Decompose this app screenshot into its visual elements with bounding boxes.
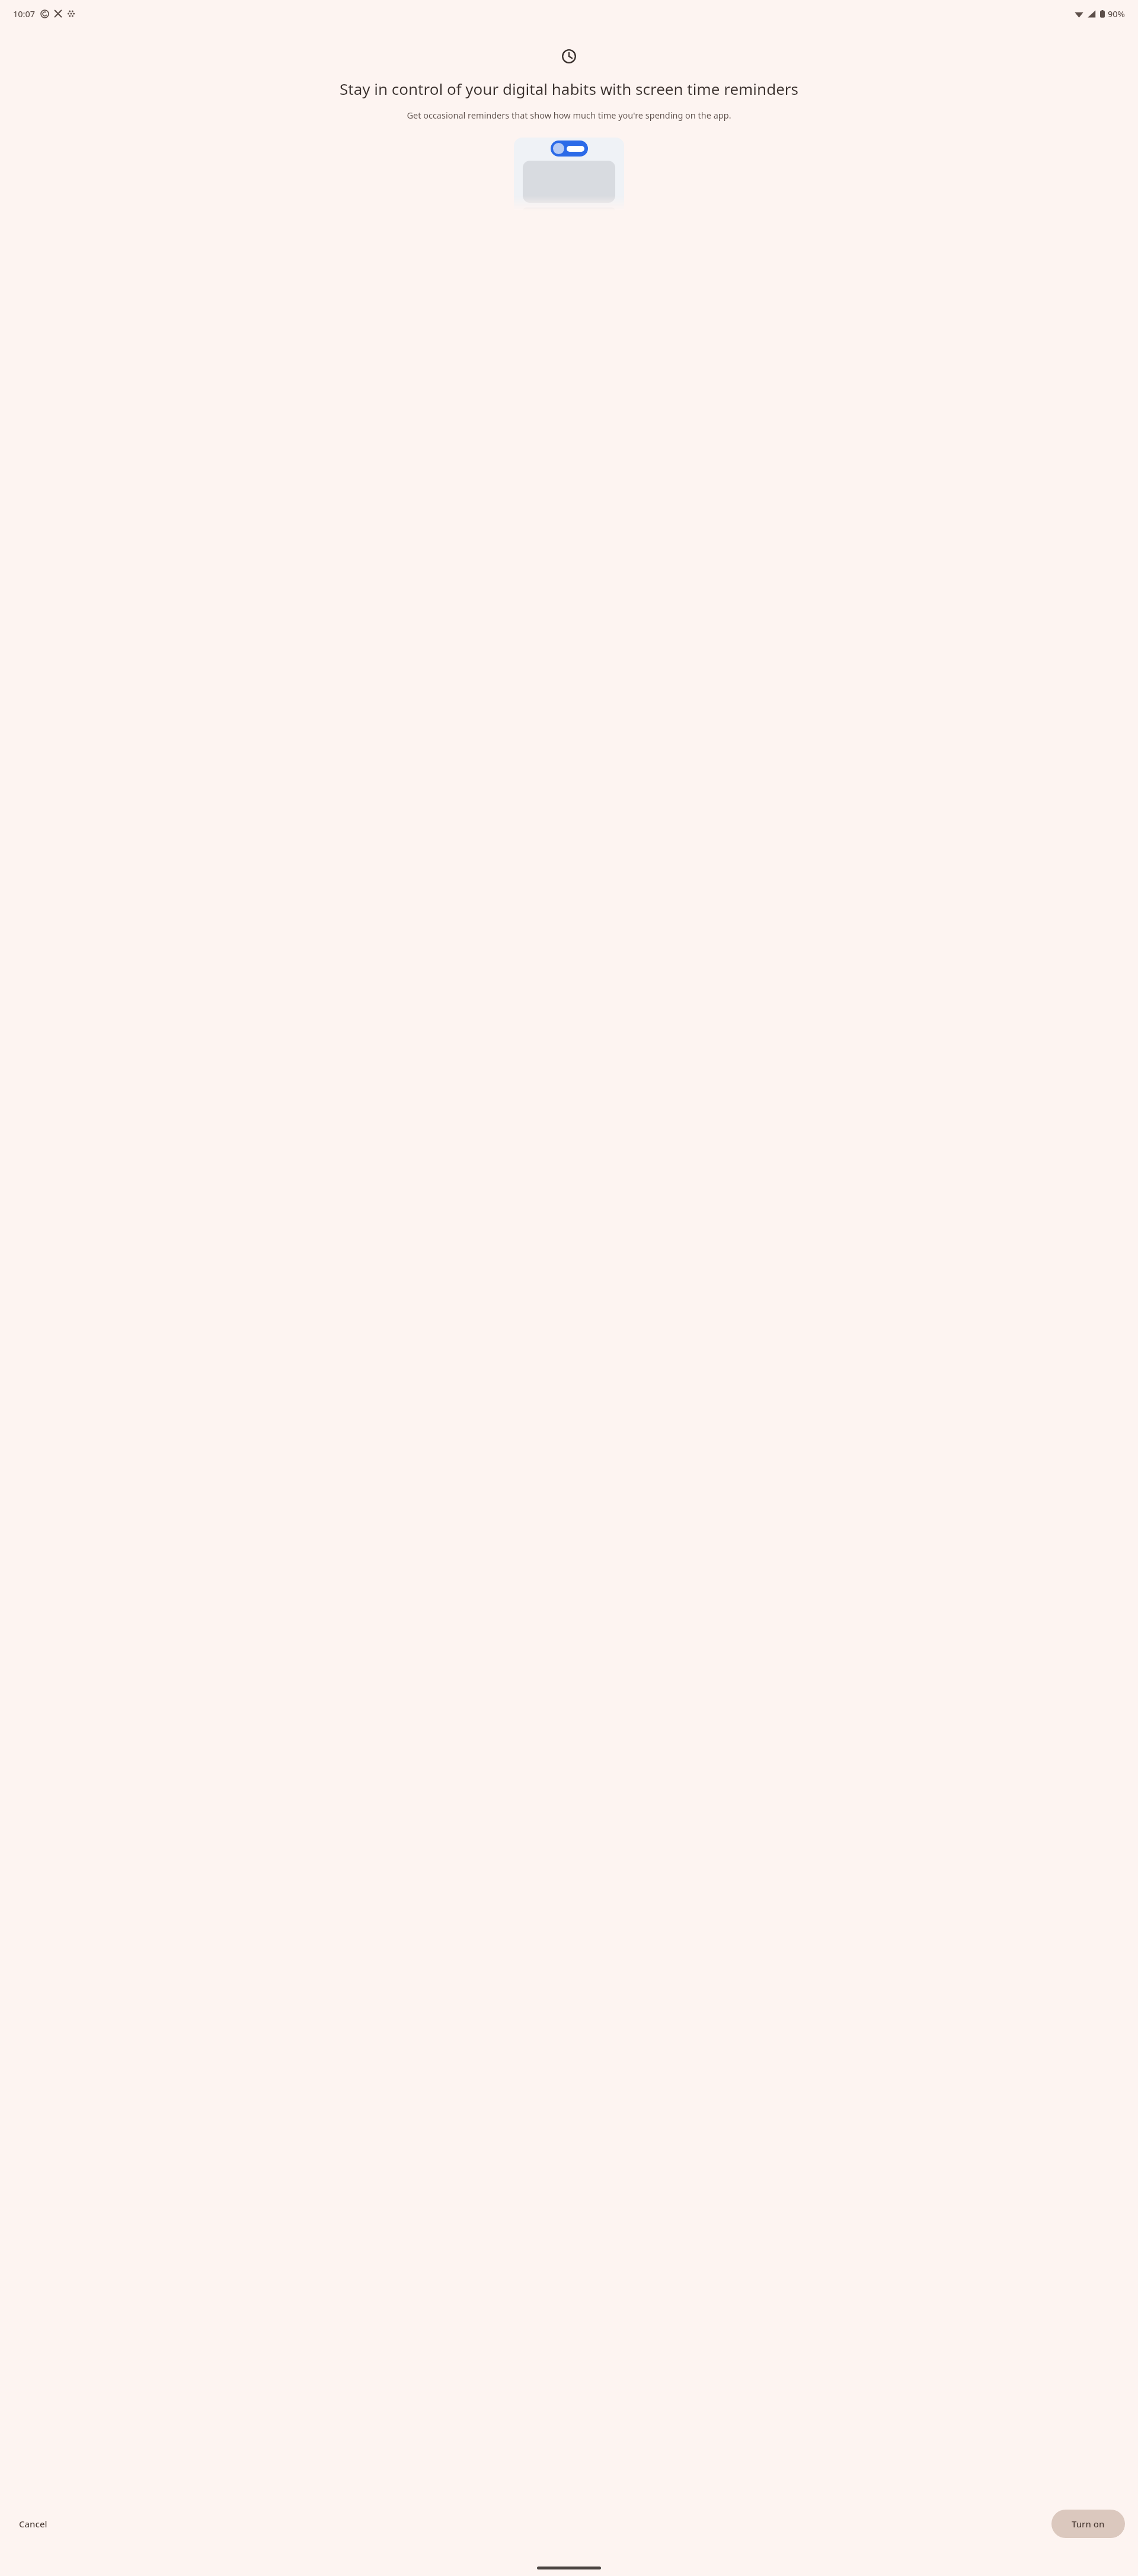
- staticText: Cancel: [19, 2518, 47, 2530]
- staticText: 10:07: [13, 8, 36, 20]
- button[interactable]: Cancel: [13, 2512, 53, 2536]
- staticText: Stay in control of your digital habits w…: [9, 78, 1129, 99]
- staticText: 90%: [1108, 8, 1125, 20]
- staticText: Get occasional reminders that show how m…: [12, 109, 1126, 121]
- staticText: Turn on: [1072, 2518, 1105, 2530]
- button[interactable]: Turn on: [1051, 2510, 1125, 2538]
